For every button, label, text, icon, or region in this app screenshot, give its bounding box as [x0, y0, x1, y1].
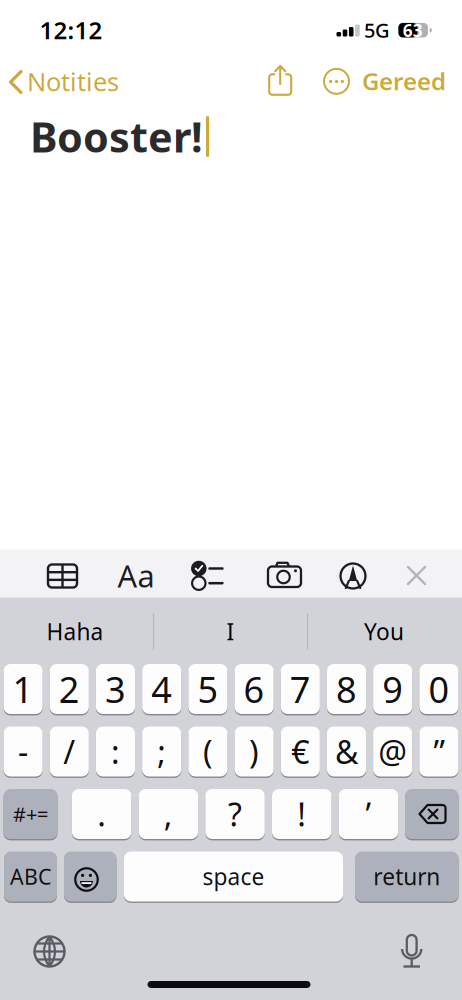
staticText: Gereed [362, 65, 446, 97]
staticText: ’ [365, 793, 371, 835]
staticText: ( [203, 730, 213, 773]
staticText: 0 [428, 665, 449, 713]
staticText: 9 [382, 665, 403, 713]
staticText: 5 [197, 665, 218, 713]
staticText: #+= [13, 801, 48, 827]
staticText: ! [297, 793, 306, 835]
staticText: : [111, 730, 120, 773]
staticText: ) [249, 730, 259, 773]
staticText: Haha [46, 616, 103, 646]
staticText: I [226, 616, 234, 646]
staticText: ? [228, 793, 242, 835]
staticText: 2 [59, 665, 80, 713]
staticText: & [335, 730, 358, 773]
staticText: 7 [290, 665, 311, 713]
staticText: Booster! [30, 109, 203, 164]
staticText: Aa [117, 555, 154, 596]
staticText: 5G [364, 17, 390, 43]
staticText: 6 [244, 665, 265, 713]
staticText: ” [433, 730, 444, 773]
staticText: 1 [13, 665, 34, 713]
staticText: 8 [336, 665, 357, 713]
staticText: You [364, 616, 404, 646]
staticText: return [373, 861, 440, 891]
staticText: Notities [27, 65, 119, 98]
staticText: - [18, 730, 28, 773]
staticText: ; [157, 730, 166, 773]
staticText: 12:12 [39, 14, 102, 46]
staticText: space [202, 861, 264, 891]
staticText: € [291, 730, 309, 773]
staticText: . [97, 793, 106, 835]
staticText: 3 [105, 665, 126, 713]
staticText: / [63, 730, 75, 773]
staticText: @ [378, 730, 407, 773]
staticText: 63 [403, 19, 423, 42]
staticText: ABC [10, 862, 51, 891]
staticText: 4 [151, 665, 172, 713]
staticText: , [164, 793, 173, 835]
